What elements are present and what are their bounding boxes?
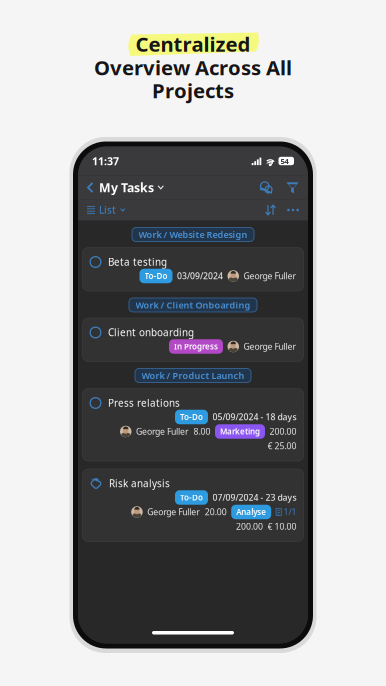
staticText: Press relations <box>108 396 180 410</box>
staticText: 8.00 <box>193 426 210 437</box>
staticText: 200.00 <box>236 521 263 532</box>
button[interactable]: My Tasks <box>87 177 164 197</box>
button[interactable]: More options <box>287 204 299 215</box>
staticText: 05/09/2024 - 18 days <box>212 411 296 423</box>
staticText: To-Do <box>144 271 167 281</box>
staticText: To-Do <box>180 412 203 422</box>
staticText: 20.00 <box>205 506 227 518</box>
staticText: Overview Across All <box>94 54 292 81</box>
staticText: 11:37 <box>92 154 119 168</box>
staticText: 54 <box>280 156 288 166</box>
staticText: Work / Client Onboarding <box>135 299 250 311</box>
staticText: 03/09/2024 <box>177 270 223 282</box>
staticText: 07/09/2024 - 23 days <box>212 492 296 503</box>
button[interactable]: Work / Website Redesign <box>132 227 254 241</box>
staticText: Beta testing <box>108 255 167 269</box>
staticText: George Fuller <box>243 270 296 282</box>
button[interactable]: Sort <box>265 204 276 215</box>
staticText: € 25.00 <box>267 440 296 452</box>
staticText: Marketing <box>220 426 260 437</box>
staticText: Work / Product Launch <box>141 369 244 382</box>
staticText: € 10.00 <box>267 521 296 532</box>
staticText: Work / Website Redesign <box>138 228 247 241</box>
button[interactable]: Work / Product Launch <box>135 368 251 382</box>
staticText: 1/1 <box>283 506 296 518</box>
staticText: My Tasks <box>99 179 154 196</box>
staticText: Projects <box>152 77 234 104</box>
staticText: Client onboarding <box>108 326 194 339</box>
staticText: George Fuller <box>136 426 189 437</box>
staticText: Analyse <box>236 507 266 517</box>
button[interactable]: Comments <box>259 180 273 194</box>
staticText: 200.00 <box>269 426 296 437</box>
staticText: George Fuller <box>147 506 200 518</box>
button[interactable]: Work / Client Onboarding <box>129 298 257 312</box>
staticText: George Fuller <box>243 341 296 352</box>
staticText: List <box>99 203 116 217</box>
staticText: To-Do <box>180 492 203 503</box>
staticText: Risk analysis <box>109 477 170 490</box>
staticText: Centralized <box>135 30 250 58</box>
button[interactable]: List <box>87 202 125 218</box>
staticText: In Progress <box>174 341 218 352</box>
button[interactable]: Filter <box>286 181 299 194</box>
